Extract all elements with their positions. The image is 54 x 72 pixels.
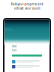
staticText: Track your progress and <box>10 2 43 6</box>
staticText: achieve your goals <box>14 7 40 10</box>
